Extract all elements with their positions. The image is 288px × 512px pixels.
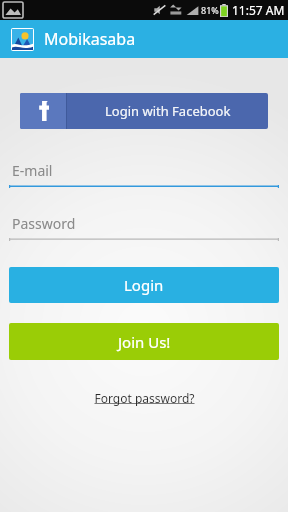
staticText: 81% [201, 4, 219, 16]
button[interactable]: Login with Facebook [20, 93, 268, 129]
button[interactable]: Password [9, 212, 279, 241]
staticText: Login with Facebook [105, 102, 231, 120]
staticText: Forgot password? [94, 390, 195, 406]
staticText: Password [12, 214, 76, 233]
button[interactable]: Join Us! [9, 323, 279, 360]
button[interactable]: Login [9, 267, 279, 303]
button[interactable]: Forgot password? [88, 387, 201, 409]
button[interactable]: E-mail [9, 159, 279, 188]
staticText: Join Us! [118, 332, 171, 352]
staticText: Login [124, 275, 164, 295]
staticText: Mobikasaba [44, 28, 136, 50]
staticText: 11:57 AM [232, 2, 285, 18]
staticText: E-mail [12, 161, 53, 180]
